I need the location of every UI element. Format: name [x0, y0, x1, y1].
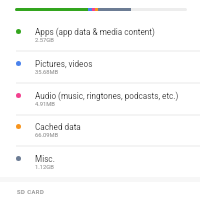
button[interactable]: Cached data: [0, 114, 200, 146]
staticText: 2.57GB: [35, 37, 54, 44]
staticText: 4.91MB: [35, 101, 55, 108]
staticText: Apps (app data & media content): [35, 27, 155, 37]
button[interactable]: Apps (app data & media content): [0, 19, 200, 51]
staticText: 66.09MB: [35, 132, 59, 139]
button[interactable]: SD CARD: [0, 185, 200, 199]
staticText: SD CARD: [17, 189, 45, 196]
button[interactable]: Pictures, videos: [0, 51, 200, 83]
button[interactable]: Misc.: [0, 146, 200, 178]
button[interactable]: Audio (music, ringtones, podcasts, etc.): [0, 83, 200, 115]
staticText: Audio (music, ringtones, podcasts, etc.): [35, 91, 179, 101]
staticText: Pictures, videos: [35, 59, 93, 69]
staticText: 1.12GB: [35, 164, 54, 171]
staticText: Misc.: [35, 154, 55, 164]
staticText: Cached data: [35, 122, 81, 132]
staticText: 35.68MB: [35, 69, 59, 76]
